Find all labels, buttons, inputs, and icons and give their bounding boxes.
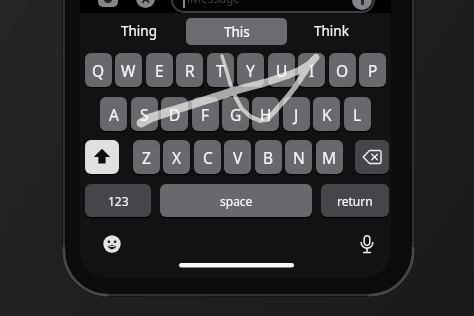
button[interactable]	[358, 235, 376, 256]
staticText: M	[322, 147, 337, 168]
staticText: K	[322, 104, 332, 125]
staticText: B	[263, 147, 274, 168]
staticText: I	[309, 60, 315, 81]
staticText: W	[121, 60, 136, 81]
button[interactable]: U	[268, 53, 295, 87]
staticText: F	[201, 104, 210, 125]
button[interactable]: M	[316, 140, 343, 174]
button[interactable]: V	[224, 140, 251, 174]
staticText: J	[294, 104, 299, 125]
staticText: R	[185, 60, 195, 81]
staticText: O	[336, 60, 349, 81]
button[interactable]	[98, 0, 118, 7]
button[interactable]: iMessage	[171, 0, 375, 13]
button[interactable]: W	[115, 53, 142, 87]
button[interactable]: J	[283, 97, 310, 131]
button[interactable]: K	[313, 97, 340, 131]
staticText: L	[353, 104, 362, 125]
button[interactable]: D	[161, 97, 188, 131]
staticText: G	[230, 104, 242, 125]
staticText: return	[337, 193, 373, 209]
button[interactable]: X	[163, 140, 190, 174]
staticText: H	[260, 104, 272, 125]
button[interactable]: Q	[85, 53, 112, 87]
button[interactable]: P	[359, 53, 386, 87]
staticText: E	[155, 60, 164, 81]
staticText: T	[216, 60, 225, 81]
button[interactable]: Thing	[96, 16, 182, 46]
button[interactable]: 123	[85, 184, 151, 217]
button[interactable]: O	[329, 53, 356, 87]
staticText: Q	[92, 60, 105, 81]
staticText: Y	[246, 60, 255, 81]
button[interactable]: A	[100, 97, 127, 131]
button[interactable]: S	[131, 97, 158, 131]
button[interactable]: R	[176, 53, 203, 87]
button[interactable]: F	[192, 97, 219, 131]
button[interactable]: Y	[237, 53, 264, 87]
staticText: X	[172, 147, 182, 168]
button[interactable]: T	[207, 53, 234, 87]
staticText: V	[233, 147, 243, 168]
button[interactable]	[103, 235, 121, 253]
button[interactable]: E	[146, 53, 173, 87]
button[interactable]: C	[194, 140, 221, 174]
button[interactable]: This	[186, 18, 287, 45]
staticText: U	[276, 60, 288, 81]
button[interactable]: space	[160, 184, 312, 217]
staticText: N	[293, 147, 305, 168]
button[interactable]: return	[321, 184, 389, 217]
button[interactable]: G	[222, 97, 249, 131]
button[interactable]	[352, 0, 372, 10]
button[interactable]	[355, 140, 389, 174]
staticText: 123	[108, 193, 129, 209]
staticText: Z	[142, 147, 151, 168]
button[interactable]: N	[285, 140, 312, 174]
button[interactable]	[85, 140, 119, 174]
staticText: Think	[314, 22, 349, 40]
button[interactable]: Think	[288, 16, 374, 46]
button[interactable]: Z	[133, 140, 160, 174]
staticText: A	[142, 0, 150, 6]
button[interactable]: A	[136, 0, 155, 8]
button[interactable]: L	[344, 97, 371, 131]
staticText: iMessage	[187, 0, 241, 6]
staticText: C	[203, 147, 213, 168]
staticText: space	[220, 193, 253, 209]
staticText: Thing	[121, 22, 157, 40]
button[interactable]: H	[252, 97, 279, 131]
button[interactable]: B	[255, 140, 282, 174]
staticText: A	[109, 104, 119, 125]
staticText: This	[224, 23, 250, 41]
staticText: P	[368, 60, 378, 81]
staticText: S	[140, 104, 149, 125]
button[interactable]: I	[298, 53, 325, 87]
staticText: D	[169, 104, 181, 125]
